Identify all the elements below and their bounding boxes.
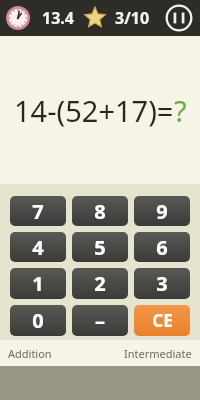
button[interactable]: 4 (10, 232, 66, 262)
button[interactable]: 6 (134, 232, 190, 262)
button[interactable]: 9 (134, 196, 190, 226)
staticText: Addition (8, 346, 52, 361)
button[interactable]: 8 (72, 196, 128, 226)
button[interactable]: 5 (72, 232, 128, 262)
staticText: 6 (156, 234, 168, 261)
button[interactable]: Pause (164, 3, 194, 33)
staticText: – (95, 307, 105, 334)
button[interactable]: CE (134, 305, 190, 336)
staticText: 13.4 (42, 7, 74, 29)
button[interactable]: 2 (72, 268, 128, 299)
staticText: CE (152, 309, 173, 332)
button[interactable]: 3 (134, 268, 190, 299)
staticText: 5 (94, 234, 106, 261)
button[interactable]: 7 (10, 196, 66, 226)
staticText: 7 (32, 198, 44, 225)
staticText: 3 (156, 270, 168, 297)
staticText: 2 (94, 270, 106, 297)
staticText: 1 (32, 270, 44, 297)
staticText: Intermediate (124, 346, 192, 361)
staticText: 4 (32, 234, 44, 261)
staticText: 8 (94, 198, 106, 225)
staticText: 14-(52+17)= (14, 91, 174, 130)
button[interactable]: 1 (10, 268, 66, 299)
staticText: 3/10 (115, 7, 150, 29)
staticText: 9 (156, 198, 168, 225)
button[interactable]: 0 (10, 305, 66, 336)
staticText: 0 (32, 307, 44, 334)
button[interactable]: – (72, 305, 128, 336)
staticText: ? (174, 91, 187, 130)
